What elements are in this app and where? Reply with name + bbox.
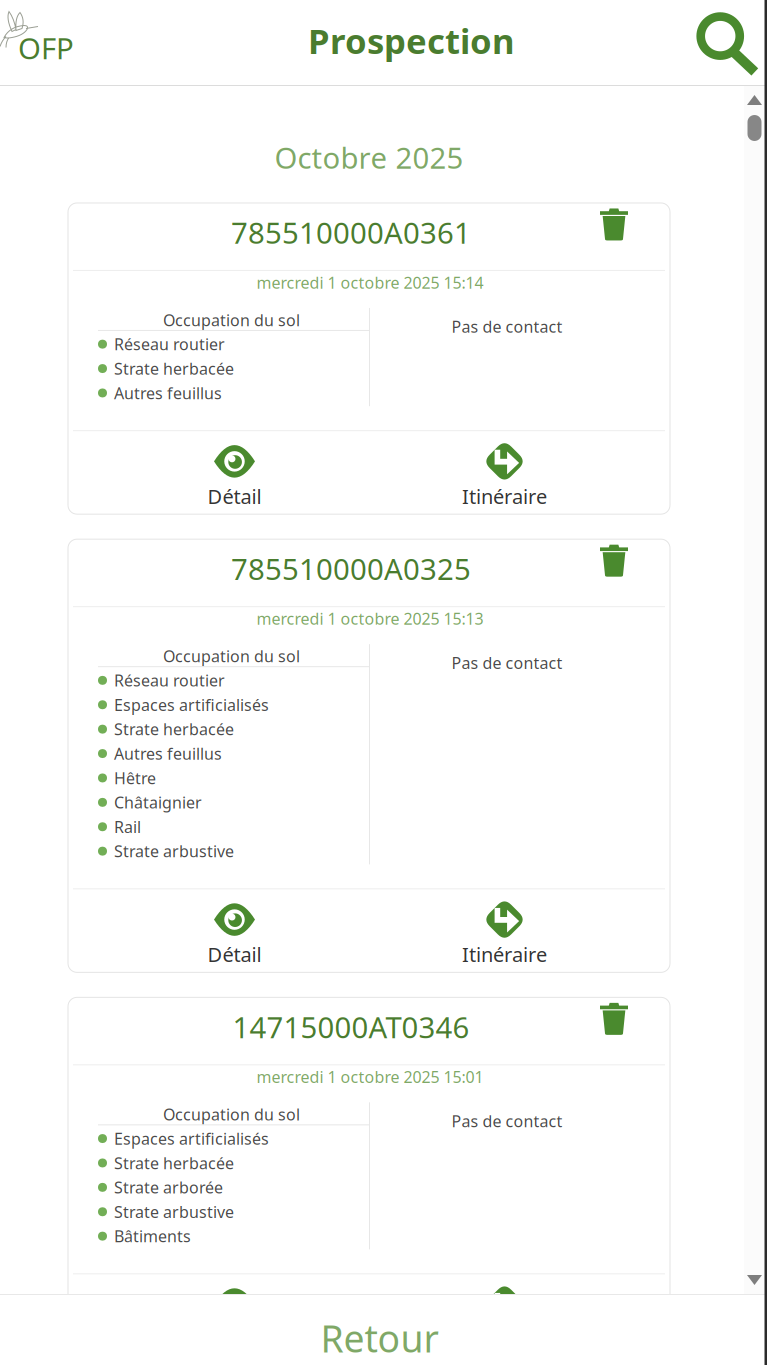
button[interactable]: Itinéraire [369, 889, 670, 972]
button[interactable]: Supprimer [600, 1007, 670, 1055]
staticText: Occupation du sol [163, 645, 300, 667]
staticText: mercredi 1 octobre 2025 15:01 [256, 1066, 483, 1087]
staticText: 14715000AT0346 [232, 1007, 469, 1046]
button[interactable]: Itinéraire [369, 431, 670, 514]
staticText: Strate arbustive [114, 840, 234, 862]
staticText: mercredi 1 octobre 2025 15:14 [256, 272, 483, 293]
staticText: Pas de contact [451, 1110, 562, 1132]
staticText: 785510000A0361 [231, 213, 471, 252]
staticText: Réseau routier [114, 333, 225, 355]
staticText: Occupation du sol [163, 309, 300, 330]
button[interactable]: Supprimer [600, 549, 670, 597]
button[interactable]: OFP [0, 11, 76, 73]
staticText: Pas de contact [451, 652, 562, 673]
staticText: Occupation du sol [163, 1104, 300, 1125]
staticText: Châtaignier [114, 792, 202, 813]
staticText: Pas de contact [451, 316, 562, 337]
staticText: Strate herbacée [114, 718, 234, 740]
staticText: Détail [207, 941, 261, 968]
staticText: Strate arborée [114, 1177, 223, 1198]
staticText: Autres feuillus [114, 743, 222, 764]
staticText: Espaces artificialisés [114, 1128, 269, 1149]
button[interactable]: Retour [0, 1295, 767, 1365]
staticText: Itinéraire [462, 483, 547, 509]
button[interactable]: Détail [68, 889, 369, 972]
staticText: Bâtiments [114, 1225, 191, 1247]
staticText: Strate herbacée [114, 358, 234, 379]
staticText: Itinéraire [462, 941, 547, 968]
button[interactable]: Détail [68, 1274, 369, 1357]
staticText: Octobre 2025 [274, 138, 463, 177]
staticText: Autres feuillus [114, 382, 222, 403]
staticText: Strate herbacée [114, 1152, 234, 1173]
button[interactable]: Défiler vers le bas [745, 1275, 764, 1294]
staticText: Retour [320, 1313, 438, 1363]
staticText: Détail [207, 483, 261, 509]
staticText: Réseau routier [114, 670, 225, 691]
button[interactable]: Itinéraire [369, 1274, 670, 1357]
button[interactable]: Supprimer [600, 212, 670, 260]
staticText: Rail [114, 816, 141, 837]
staticText: Hêtre [114, 767, 156, 788]
staticText: mercredi 1 octobre 2025 15:13 [256, 608, 483, 629]
staticText: 785510000A0325 [231, 549, 471, 588]
staticText: OFP [18, 28, 74, 67]
staticText: Espaces artificialisés [114, 694, 269, 715]
button[interactable]: Rechercher [694, 2, 767, 82]
button[interactable]: Détail [68, 431, 369, 514]
button[interactable]: Défiler vers le haut [745, 86, 764, 105]
staticText: Strate arbustive [114, 1201, 234, 1222]
staticText: Prospection [308, 17, 515, 63]
